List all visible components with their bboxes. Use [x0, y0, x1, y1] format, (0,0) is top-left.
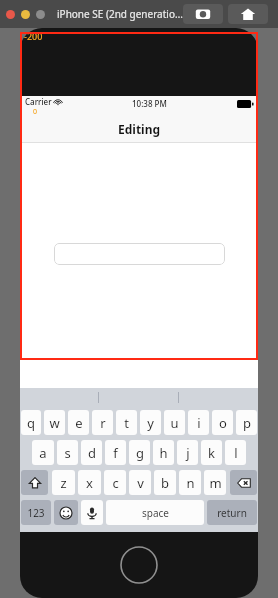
button[interactable]: Close: [6, 10, 15, 19]
button[interactable]: t: [116, 410, 137, 435]
button[interactable]: x: [78, 470, 101, 495]
button[interactable]: space: [106, 500, 204, 525]
staticText: d: [88, 444, 96, 462]
staticText: a: [39, 444, 47, 462]
button[interactable]: p: [236, 410, 257, 435]
button[interactable]: Backspace: [230, 470, 257, 495]
button[interactable]: Dictation: [81, 500, 103, 525]
button[interactable]: v: [129, 470, 151, 495]
button[interactable]: Shift: [21, 470, 48, 495]
staticText: u: [170, 414, 179, 432]
staticText: space: [142, 506, 169, 520]
button[interactable]: return: [207, 500, 257, 525]
staticText: n: [186, 474, 195, 492]
staticText: iPhone SE (2nd generatio…: [57, 7, 183, 21]
button[interactable]: Home button: [120, 546, 158, 584]
staticText: -200: [24, 30, 43, 42]
button[interactable]: z: [52, 470, 75, 495]
staticText: m: [209, 474, 222, 492]
staticText: Editing: [118, 121, 161, 137]
button[interactable]: Screenshot: [183, 4, 223, 24]
button[interactable]: i: [188, 410, 209, 435]
button[interactable]: y: [140, 410, 161, 435]
staticText: return: [217, 506, 247, 520]
staticText: o: [219, 414, 227, 432]
staticText: g: [136, 444, 144, 462]
button[interactable]: b: [154, 470, 176, 495]
button[interactable]: d: [81, 440, 102, 465]
button[interactable]: k: [201, 440, 222, 465]
button[interactable]: o: [212, 410, 233, 435]
button[interactable]: h: [153, 440, 174, 465]
staticText: j: [186, 444, 190, 462]
staticText: 0: [33, 107, 38, 116]
button[interactable]: r: [92, 410, 113, 435]
button[interactable]: q: [21, 410, 41, 435]
staticText: p: [243, 414, 251, 432]
staticText: l: [234, 444, 238, 462]
button[interactable]: Home: [228, 4, 268, 24]
button[interactable]: s: [57, 440, 78, 465]
button[interactable]: Minimize: [21, 10, 30, 19]
staticText: x: [86, 474, 93, 492]
staticText: 123: [27, 506, 45, 520]
staticText: h: [159, 444, 168, 462]
button[interactable]: a: [32, 440, 54, 465]
button[interactable]: g: [129, 440, 150, 465]
staticText: t: [124, 414, 129, 432]
button[interactable]: m: [204, 470, 226, 495]
staticText: i: [197, 414, 201, 432]
staticText: e: [75, 414, 83, 432]
staticText: Carrier: [25, 96, 52, 107]
staticText: b: [161, 474, 169, 492]
staticText: f: [113, 444, 118, 462]
button[interactable]: 123: [21, 500, 51, 525]
button[interactable]: n: [179, 470, 201, 495]
button[interactable]: w: [44, 410, 65, 435]
staticText: r: [100, 414, 106, 432]
button[interactable]: l: [225, 440, 246, 465]
button[interactable]: c: [104, 470, 126, 495]
staticText: k: [208, 444, 215, 462]
button[interactable]: u: [164, 410, 185, 435]
button[interactable]: [54, 243, 225, 265]
button[interactable]: Zoom: [36, 10, 45, 19]
button[interactable]: Emoji: [54, 500, 78, 525]
button[interactable]: f: [105, 440, 126, 465]
staticText: q: [27, 414, 35, 432]
staticText: w: [49, 414, 60, 432]
staticText: y: [147, 414, 154, 432]
staticText: v: [137, 474, 144, 492]
button[interactable]: e: [68, 410, 89, 435]
staticText: c: [112, 474, 119, 492]
staticText: s: [64, 444, 71, 462]
staticText: z: [60, 474, 67, 492]
staticText: 10:38 PM: [132, 98, 167, 109]
button[interactable]: j: [177, 440, 198, 465]
